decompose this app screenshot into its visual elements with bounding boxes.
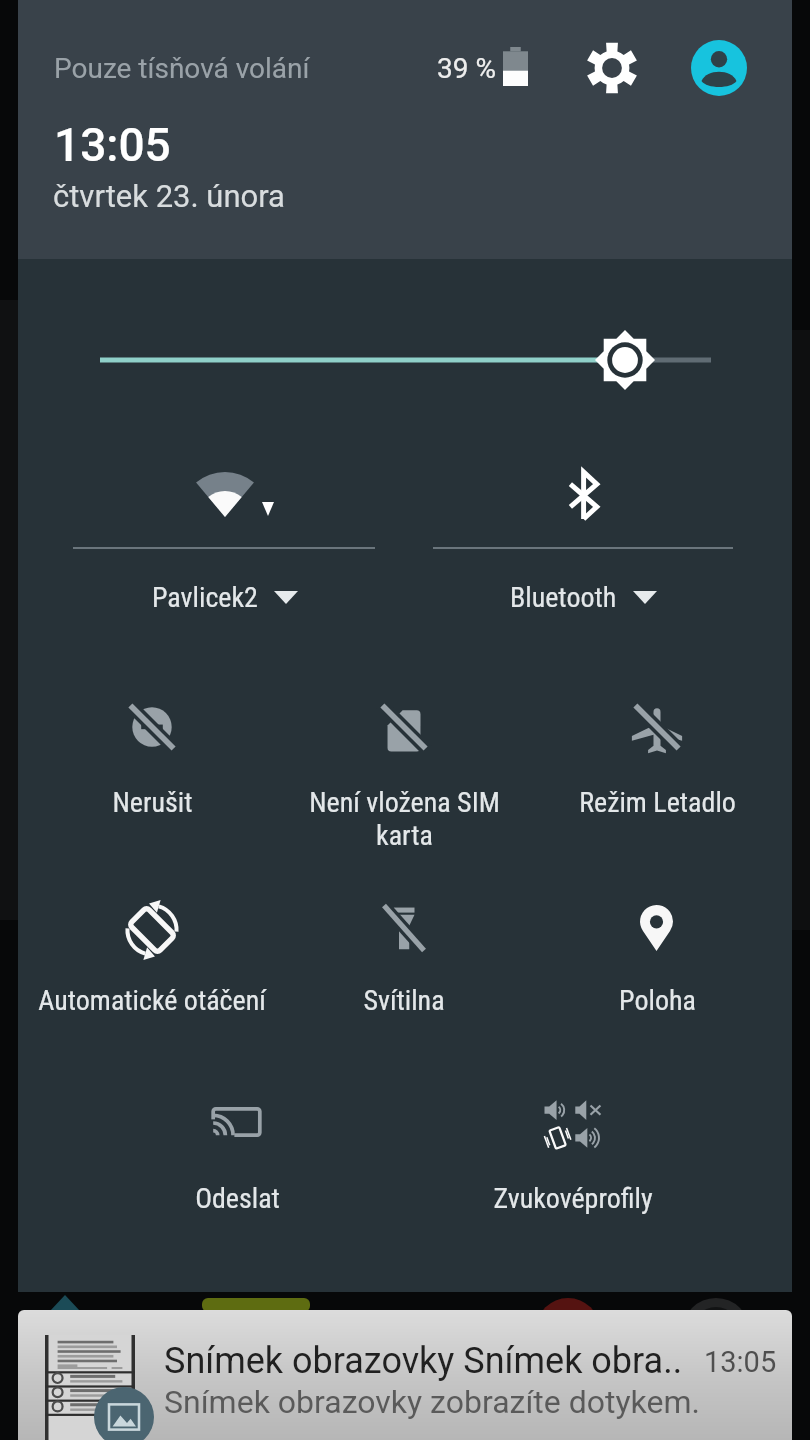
staticText: Není vložena SIM karta xyxy=(309,786,500,852)
staticText: 13:05 xyxy=(704,1345,777,1379)
button[interactable]: Pavlicek2 xyxy=(60,455,390,620)
staticText: Snímek obrazovky zobrazíte dotykem. xyxy=(164,1383,700,1421)
button[interactable]: Brightness xyxy=(595,330,655,390)
staticText: Odeslat xyxy=(195,1182,280,1215)
staticText: Automatické otáčení xyxy=(38,984,266,1017)
staticText: Pouze tísňová volání xyxy=(54,52,310,85)
button[interactable]: Snímek obrazovky Snímek obra.. xyxy=(18,1310,792,1440)
button[interactable]: Flashlight xyxy=(279,910,529,1070)
staticText: Zvukovéprofily xyxy=(493,1182,653,1215)
button[interactable]: Do not disturb xyxy=(27,712,277,872)
button[interactable]: Sound profiles xyxy=(448,1108,698,1268)
staticText: čtvrtek 23. února xyxy=(53,178,285,214)
staticText: Pavlicek2 xyxy=(152,581,258,614)
staticText: Nerušit xyxy=(112,786,193,819)
staticText: Poloha xyxy=(619,984,696,1017)
button[interactable]: User profile xyxy=(691,40,747,96)
button[interactable]: Bluetooth xyxy=(420,455,746,620)
button[interactable]: Auto rotate xyxy=(18,910,286,1070)
staticText: 13:05 xyxy=(54,118,171,172)
staticText: 39 % xyxy=(437,52,496,85)
button[interactable]: Cast xyxy=(112,1108,362,1268)
button[interactable]: Airplane mode xyxy=(532,712,782,872)
staticText: Bluetooth xyxy=(510,581,617,614)
button[interactable]: Location xyxy=(532,910,782,1070)
button[interactable]: SIM card xyxy=(279,712,529,872)
button[interactable]: Settings xyxy=(582,38,642,98)
staticText: Režim Letadlo xyxy=(579,786,736,819)
staticText: Svítilna xyxy=(363,984,445,1017)
staticText: Snímek obrazovky Snímek obra.. xyxy=(164,1340,683,1382)
